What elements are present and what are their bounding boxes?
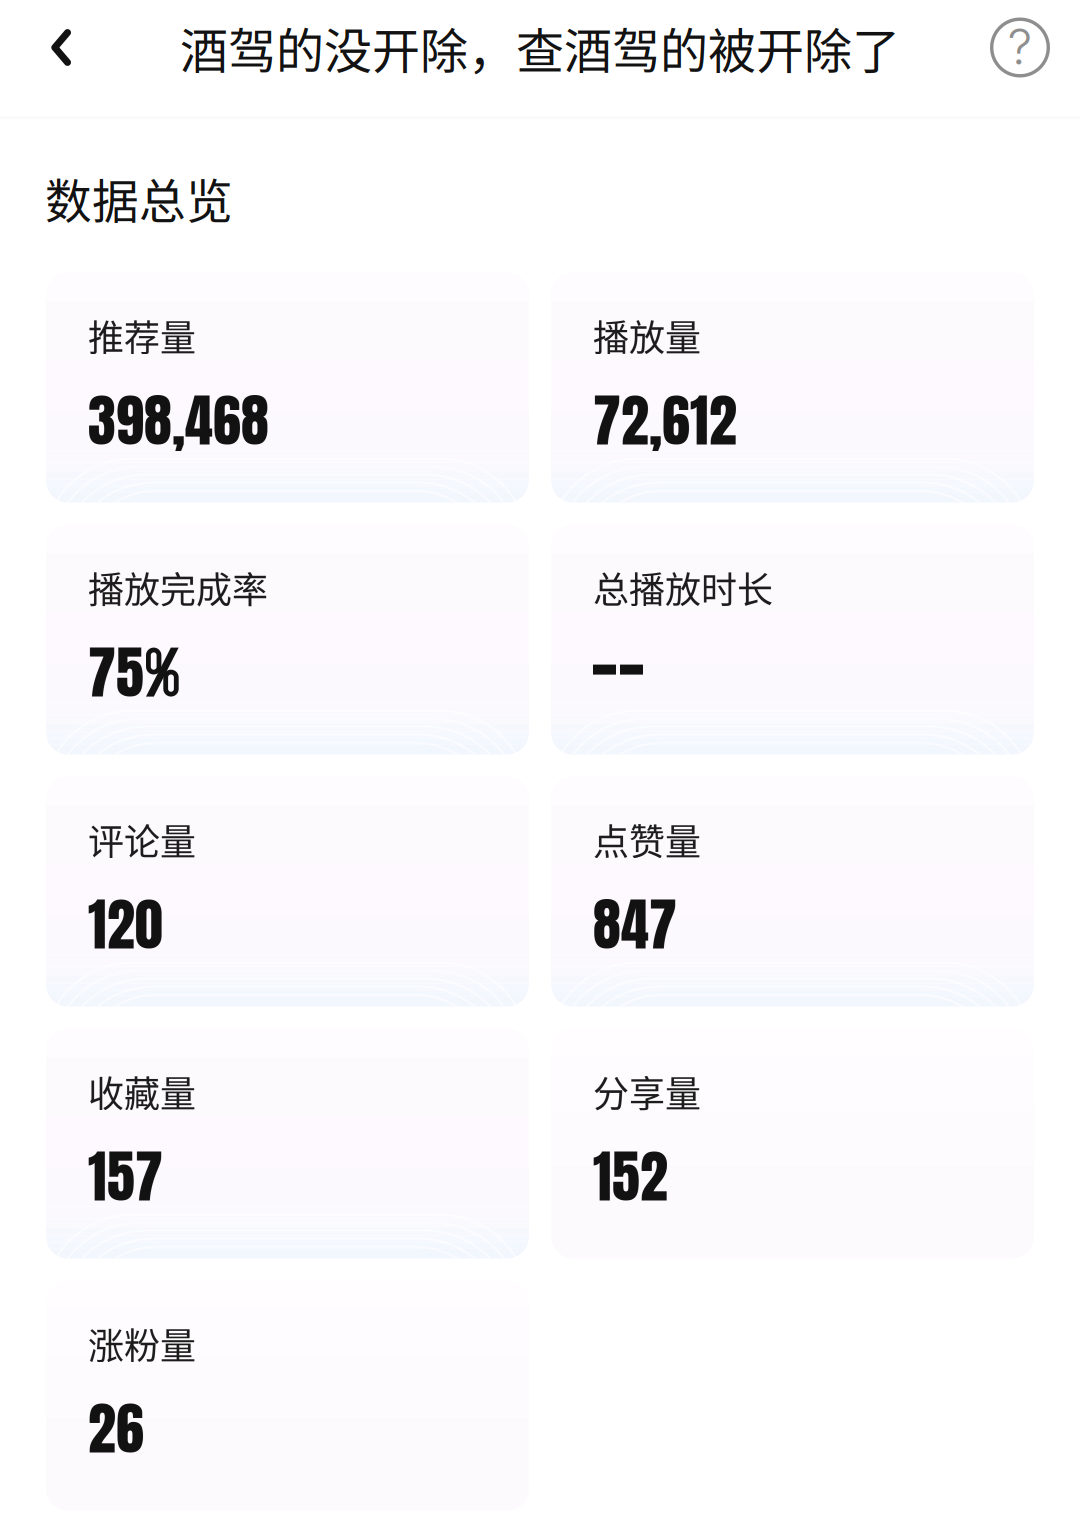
- staticText: 总播放时长: [593, 562, 773, 614]
- staticText: 398,468: [88, 379, 269, 463]
- button[interactable]: 涨粉量: [46, 1281, 529, 1511]
- staticText: 播放完成率: [88, 562, 268, 614]
- staticText: 点赞量: [593, 814, 701, 866]
- staticText: 推荐量: [88, 310, 196, 362]
- button[interactable]: 收藏量: [46, 1029, 529, 1259]
- button[interactable]: 总播放时长: [551, 525, 1034, 755]
- staticText: 120: [88, 883, 163, 967]
- staticText: 26: [88, 1387, 144, 1471]
- button[interactable]: 点赞量: [551, 777, 1034, 1007]
- staticText: 72,612: [593, 379, 737, 463]
- staticText: 收藏量: [88, 1066, 196, 1118]
- staticText: 152: [593, 1135, 668, 1219]
- staticText: 157: [88, 1135, 163, 1219]
- staticText: 数据总览: [45, 164, 233, 232]
- staticText: 分享量: [593, 1066, 701, 1118]
- button[interactable]: Back: [0, 0, 97, 95]
- staticText: 评论量: [88, 814, 196, 866]
- button[interactable]: 推荐量: [46, 273, 529, 503]
- button[interactable]: Help: [964, 0, 1080, 95]
- staticText: 播放量: [593, 310, 701, 362]
- staticText: ?: [1007, 17, 1032, 76]
- staticText: 75: [88, 631, 144, 715]
- staticText: 涨粉量: [88, 1318, 196, 1370]
- button[interactable]: 分享量: [551, 1029, 1034, 1259]
- staticText: 847: [593, 883, 677, 967]
- button[interactable]: 播放完成率: [46, 525, 529, 755]
- button[interactable]: 播放量: [551, 273, 1034, 503]
- button[interactable]: 评论量: [46, 777, 529, 1007]
- staticText: 酒驾的没开除，查酒驾的被开除了: [180, 13, 900, 82]
